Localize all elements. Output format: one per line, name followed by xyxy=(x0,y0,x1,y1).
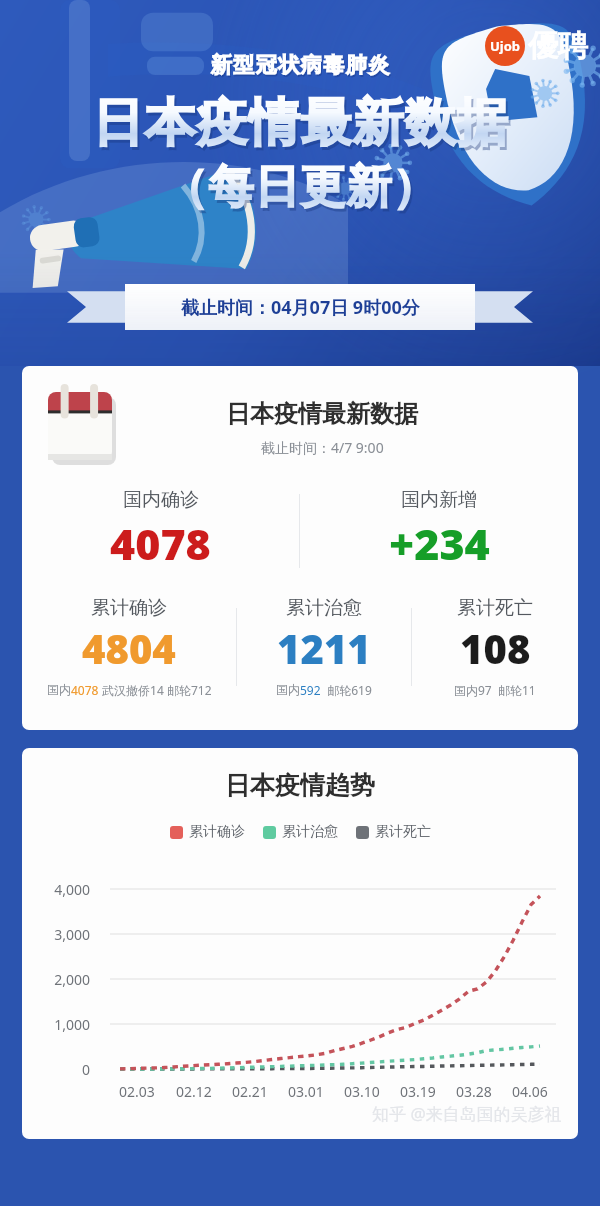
staticText: 0 xyxy=(22,1060,90,1079)
staticText: 04.06 xyxy=(512,1082,548,1101)
staticText: 4804 xyxy=(82,621,176,675)
button[interactable]: 累计死亡 xyxy=(356,823,431,841)
staticText: 02.21 xyxy=(232,1082,268,1101)
staticText: 優聘 xyxy=(528,27,588,65)
button[interactable]: 累计死亡 xyxy=(412,596,578,708)
other: Calendar April 7 xyxy=(48,390,118,466)
staticText: 4078 xyxy=(71,682,99,698)
staticText: Ujob xyxy=(490,37,521,55)
staticText: 国内新增 xyxy=(401,488,477,512)
staticText: 累计确诊 xyxy=(189,823,245,841)
button[interactable]: 国内确诊 xyxy=(22,488,299,574)
button[interactable]: 累计确诊 xyxy=(22,596,236,708)
staticText: 截止时间：04月07日 9时00分 xyxy=(181,295,420,320)
staticText: 国内 xyxy=(47,682,71,697)
staticText: 国内确诊 xyxy=(123,488,199,512)
staticText: 累计确诊 xyxy=(91,596,167,620)
staticText: 累计死亡 xyxy=(375,823,431,841)
staticText: 日本疫情最新数据 xyxy=(226,399,418,429)
staticText: 4,000 xyxy=(22,880,90,899)
staticText: （每日更新） xyxy=(164,162,440,219)
staticText: 02.03 xyxy=(119,1082,155,1101)
staticText: 1211 xyxy=(277,621,371,675)
staticText: 日本疫情趋势 xyxy=(225,770,375,801)
staticText: 1,000 xyxy=(22,1015,90,1034)
staticText: 新型冠状病毒肺炎 xyxy=(211,54,391,80)
staticText: 03.01 xyxy=(288,1082,324,1101)
staticText: 新型冠状病毒肺炎 xyxy=(210,52,390,78)
staticText: 日本疫情最新数据 xyxy=(92,91,508,155)
button[interactable]: 累计确诊 xyxy=(170,823,245,841)
staticText: 知乎 @来自岛国的吴彦祖 xyxy=(372,1102,562,1125)
staticText: 2,000 xyxy=(22,970,90,989)
staticText: 武汉撤侨14 邮轮712 xyxy=(99,682,212,698)
staticText: 592 xyxy=(300,682,321,698)
staticText: 国内 xyxy=(276,682,300,697)
staticText: 日本疫情最新数据 xyxy=(94,94,510,158)
button[interactable]: 国内新增 xyxy=(300,488,578,574)
staticText: 累计治愈 xyxy=(286,596,362,620)
staticText: 03.10 xyxy=(344,1082,380,1101)
staticText: 截止时间：4/7 9:00 xyxy=(261,438,384,457)
staticText: 累计治愈 xyxy=(282,823,338,841)
staticText: 108 xyxy=(460,621,531,675)
button[interactable]: 累计治愈 xyxy=(263,823,338,841)
staticText: 邮轮619 xyxy=(321,682,372,698)
staticText: 03.28 xyxy=(456,1082,492,1101)
staticText: 4078 xyxy=(110,514,211,573)
staticText: 国内97 邮轮11 xyxy=(454,682,536,698)
button[interactable]: 累计治愈 xyxy=(237,596,411,708)
button[interactable]: Ujob 优聘 logo xyxy=(485,26,588,66)
button[interactable]: 截止时间：04月07日 9时00分 xyxy=(0,284,600,330)
staticText: 累计死亡 xyxy=(457,596,533,620)
staticText: 3,000 xyxy=(22,925,90,944)
staticText: （每日更新） xyxy=(162,159,438,216)
staticText: 02.12 xyxy=(176,1082,212,1101)
staticText: 03.19 xyxy=(400,1082,436,1101)
staticText: +234 xyxy=(389,514,490,573)
